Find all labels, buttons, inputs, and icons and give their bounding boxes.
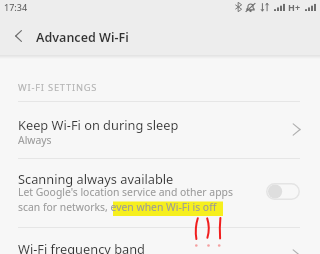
staticText: Keep Wi-Fi on during sleep bbox=[18, 116, 179, 133]
button[interactable]: Scanning always available bbox=[266, 183, 300, 200]
staticText: 17:34 bbox=[4, 1, 28, 13]
button[interactable]: Back bbox=[2, 20, 34, 52]
staticText: scan for networks, even when Wi-Fi is of… bbox=[18, 200, 217, 214]
staticText: WI-FI SETTINGS bbox=[18, 81, 98, 94]
staticText: Wi-Fi frequency band bbox=[18, 240, 145, 254]
staticText: Scanning always available bbox=[18, 170, 174, 187]
button[interactable]: Wi-Fi frequency band bbox=[0, 228, 320, 254]
staticText: Advanced Wi-Fi bbox=[36, 29, 129, 46]
button[interactable]: Keep Wi-Fi on during sleep bbox=[0, 102, 320, 158]
staticText: Always bbox=[18, 133, 52, 147]
staticText: Let Google's location service and other … bbox=[18, 185, 233, 199]
staticText: H+ bbox=[288, 1, 301, 13]
button[interactable]: Scanning always available bbox=[0, 159, 320, 227]
